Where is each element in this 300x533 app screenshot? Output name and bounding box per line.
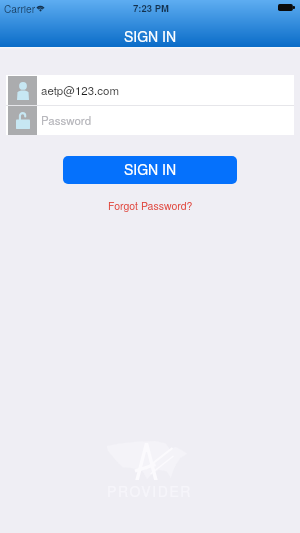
button[interactable]: Forgot Password?: [98, 196, 203, 215]
other: Battery: [278, 4, 295, 11]
other: User: [17, 82, 29, 100]
staticText: SIGN IN: [124, 159, 177, 179]
other: Password: [16, 113, 30, 129]
staticText: SIGN IN: [124, 26, 177, 46]
staticText: Carrier: [4, 1, 36, 16]
button[interactable]: User: [6, 75, 294, 105]
other: Wi-Fi: [36, 4, 45, 11]
staticText: 7:23 PM: [133, 1, 169, 15]
staticText: Forgot Password?: [108, 198, 193, 213]
button[interactable]: Password: [6, 105, 294, 135]
staticText: Password: [41, 112, 92, 128]
button[interactable]: SIGN IN: [63, 156, 237, 184]
staticText: aetp@123.com: [41, 82, 120, 98]
